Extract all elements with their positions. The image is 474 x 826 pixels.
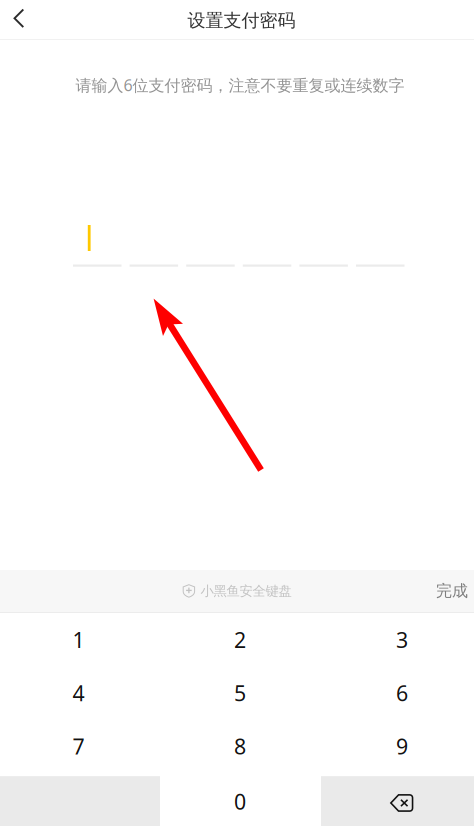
button[interactable]: 7 [0, 719, 160, 773]
button[interactable]: 6 [321, 666, 474, 719]
staticText: 完成 [436, 581, 468, 601]
staticText: 6 [396, 679, 408, 707]
staticText: 请输入6位支付密码，注意不要重复或连续数字 [75, 74, 404, 96]
staticText: 8 [234, 732, 246, 760]
button[interactable]: 完成 [436, 570, 474, 612]
staticText: 0 [234, 787, 246, 815]
staticText: 1 [73, 625, 85, 654]
staticText: 2 [234, 625, 246, 654]
button[interactable]: 2 [160, 613, 321, 666]
staticText: 7 [73, 732, 85, 760]
staticText: 5 [234, 679, 246, 707]
button[interactable]: Back [0, 0, 40, 38]
staticText: 9 [396, 732, 408, 760]
staticText: 3 [396, 625, 408, 654]
staticText: 4 [73, 679, 85, 707]
staticText: 设置支付密码 [187, 9, 295, 32]
button[interactable]: 3 [321, 613, 474, 666]
button[interactable]: 5 [160, 666, 321, 719]
button[interactable]: 0 [160, 775, 321, 826]
button[interactable]: 4 [0, 666, 160, 719]
button[interactable]: Delete [321, 776, 474, 826]
button[interactable]: Payment password field [73, 225, 412, 267]
staticText: 小黑鱼安全键盘 [200, 583, 291, 599]
button[interactable]: 8 [160, 719, 321, 773]
button[interactable]: 1 [0, 613, 160, 666]
button[interactable]: 9 [321, 719, 474, 773]
